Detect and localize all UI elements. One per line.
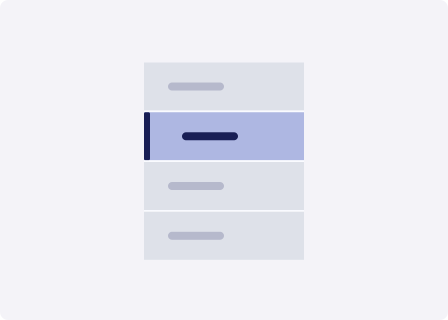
- button[interactable]: List item: [144, 62, 304, 110]
- button[interactable]: List item: [144, 212, 304, 260]
- button[interactable]: Selected list item: [144, 112, 304, 160]
- button[interactable]: List item: [144, 162, 304, 210]
